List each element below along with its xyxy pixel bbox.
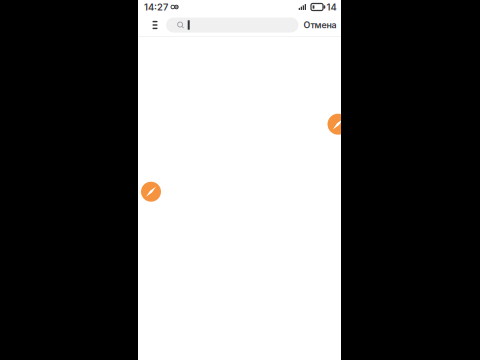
button[interactable]: Search field [166,17,298,32]
staticText: 14:27 [144,1,168,13]
button[interactable]: Menu [145,16,166,34]
staticText: 14 [326,1,336,13]
staticText: Отмена [303,20,336,30]
button[interactable]: Отмена [303,20,336,30]
